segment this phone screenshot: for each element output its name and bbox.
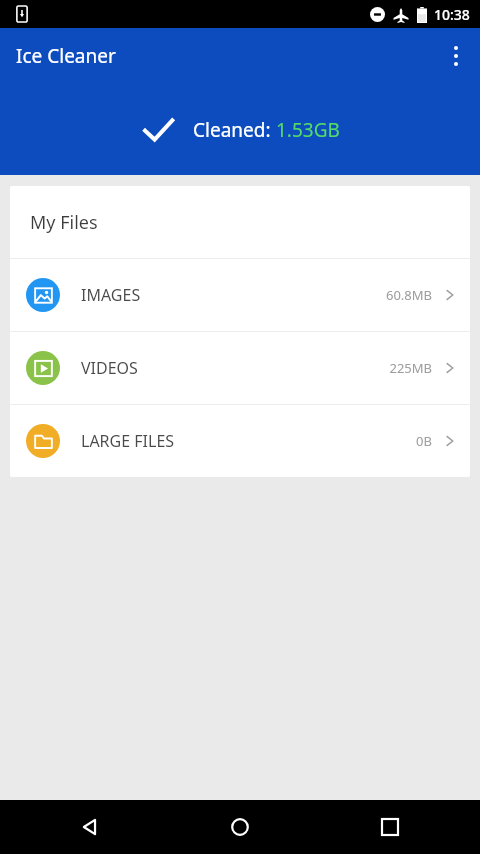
button[interactable]: Home [180,800,300,854]
staticText: IMAGES [81,284,141,306]
button[interactable]: VIDEOS [10,332,470,404]
staticText: 0B [416,432,432,450]
staticText: 1.53GB [276,117,340,143]
staticText: Cleaned: [193,117,276,143]
button[interactable]: Recent apps [330,800,450,854]
staticText: VIDEOS [81,357,138,379]
button[interactable]: More options [432,32,480,80]
staticText: LARGE FILES [81,430,175,452]
button[interactable]: Back [30,800,150,854]
button[interactable]: IMAGES [10,259,470,331]
staticText: 60.8MB [385,286,432,304]
staticText: 225MB [389,359,432,377]
staticText: 10:38 [434,5,470,24]
staticText: Ice Cleaner [16,43,116,69]
button[interactable]: LARGE FILES [10,405,470,477]
staticText: My Files [30,210,98,235]
